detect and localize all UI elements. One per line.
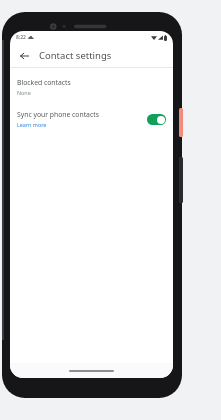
- staticText: None: [17, 89, 31, 96]
- staticText: Contact settings: [39, 49, 112, 62]
- button[interactable]: Blocked contacts: [10, 76, 173, 98]
- button[interactable]: Back: [16, 48, 32, 64]
- button[interactable]: Sync your phone contacts: [147, 114, 166, 125]
- staticText: Learn more: [17, 121, 47, 128]
- staticText: Sync your phone contacts: [17, 110, 99, 119]
- staticText: Blocked contacts: [17, 78, 71, 87]
- staticText: 8:22: [16, 34, 26, 41]
- button[interactable]: Power: [179, 108, 183, 137]
- button[interactable]: Sync your phone contacts: [10, 108, 173, 130]
- button[interactable]: Volume: [179, 157, 183, 203]
